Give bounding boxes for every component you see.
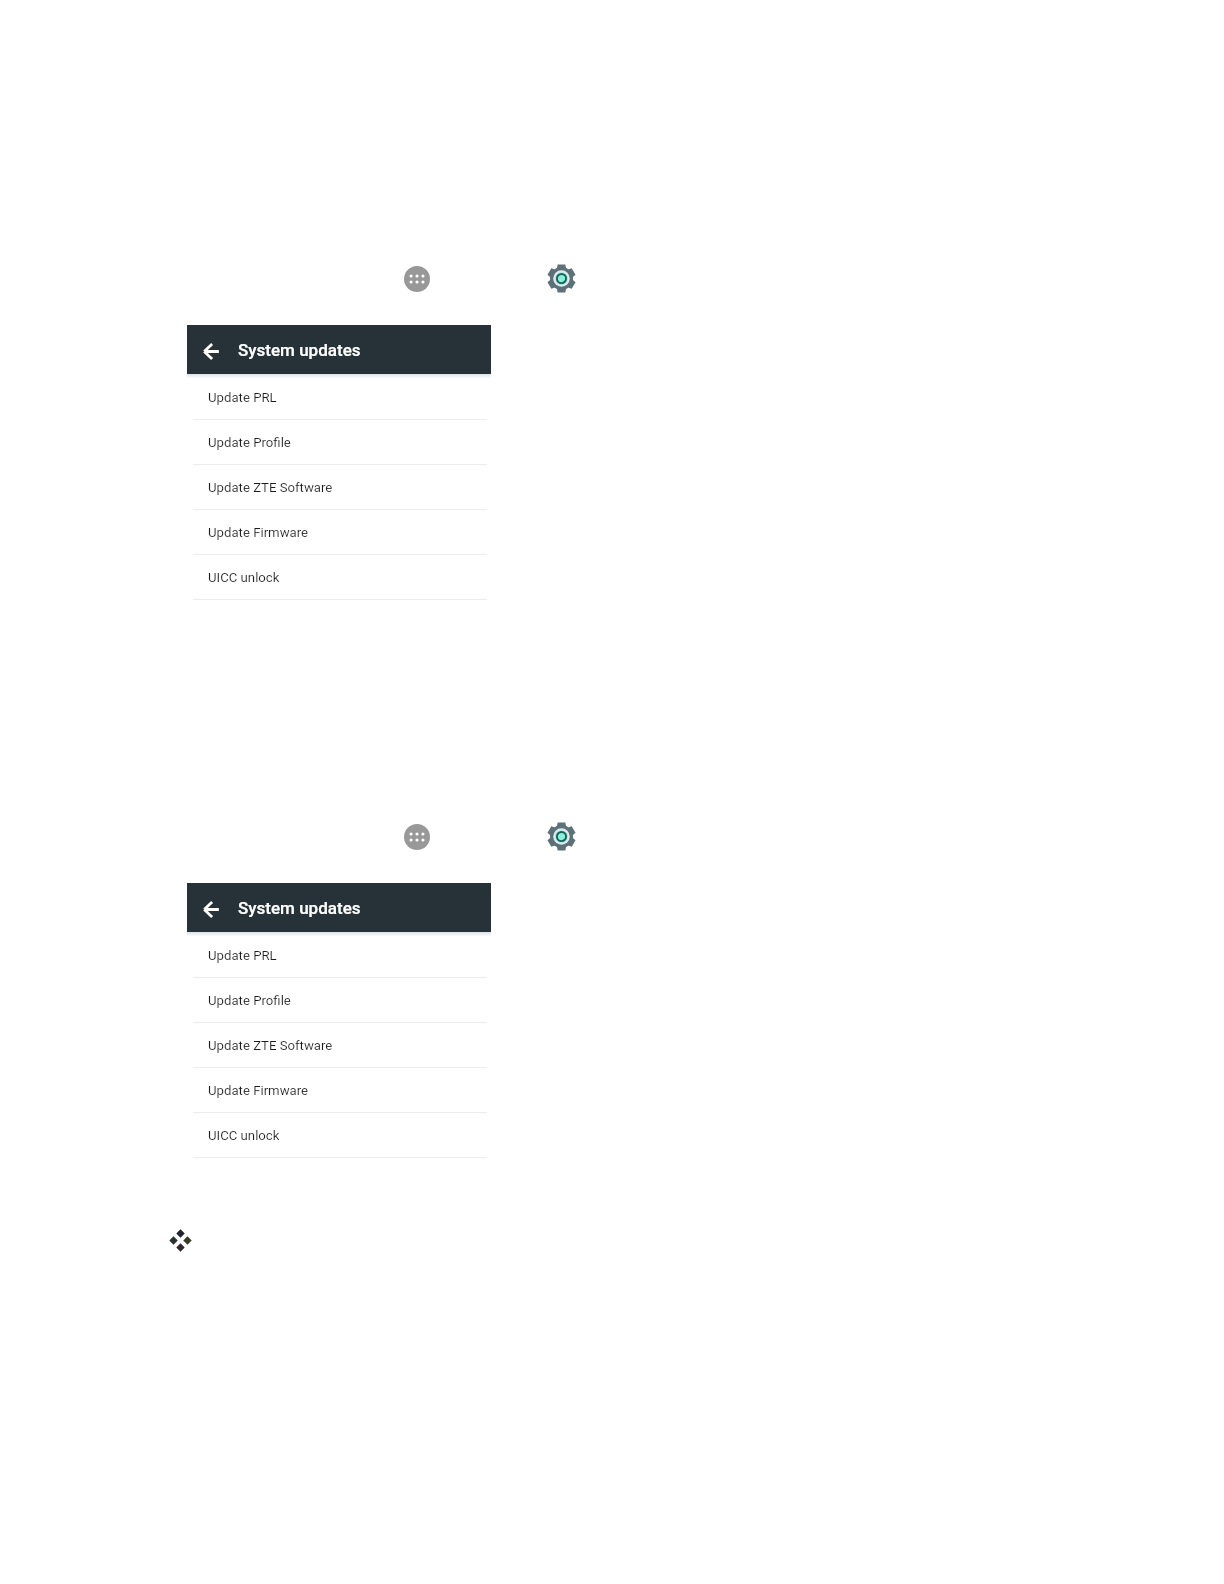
staticText: Update ZTE Software [208, 1038, 333, 1053]
button[interactable]: UICC unlock [187, 555, 491, 600]
staticText: Update PRL [208, 390, 277, 405]
staticText: UICC unlock [208, 1128, 280, 1143]
button[interactable]: Back [195, 893, 228, 926]
button[interactable]: Update PRL [187, 933, 491, 978]
button[interactable]: Settings [547, 264, 576, 293]
staticText: Update Firmware [208, 525, 309, 540]
button[interactable]: Update Firmware [187, 1068, 491, 1113]
button[interactable]: Settings [547, 822, 576, 851]
button[interactable]: Back [195, 335, 228, 368]
staticText: System updates [238, 340, 361, 360]
staticText: Update Profile [208, 435, 291, 450]
staticText: Update ZTE Software [208, 480, 333, 495]
button[interactable]: UICC unlock [187, 1113, 491, 1158]
button[interactable]: Apps [404, 824, 430, 850]
button[interactable]: Update Profile [187, 978, 491, 1023]
button[interactable]: Update Profile [187, 420, 491, 465]
button[interactable]: Apps [404, 266, 430, 292]
staticText: System updates [238, 898, 361, 918]
button[interactable]: Logo [169, 1229, 192, 1252]
button[interactable]: Update ZTE Software [187, 1023, 491, 1068]
staticText: UICC unlock [208, 570, 280, 585]
button[interactable]: Update Firmware [187, 510, 491, 555]
button[interactable]: Update ZTE Software [187, 465, 491, 510]
button[interactable]: Update PRL [187, 375, 491, 420]
staticText: Update Profile [208, 993, 291, 1008]
staticText: Update PRL [208, 948, 277, 963]
staticText: Update Firmware [208, 1083, 309, 1098]
